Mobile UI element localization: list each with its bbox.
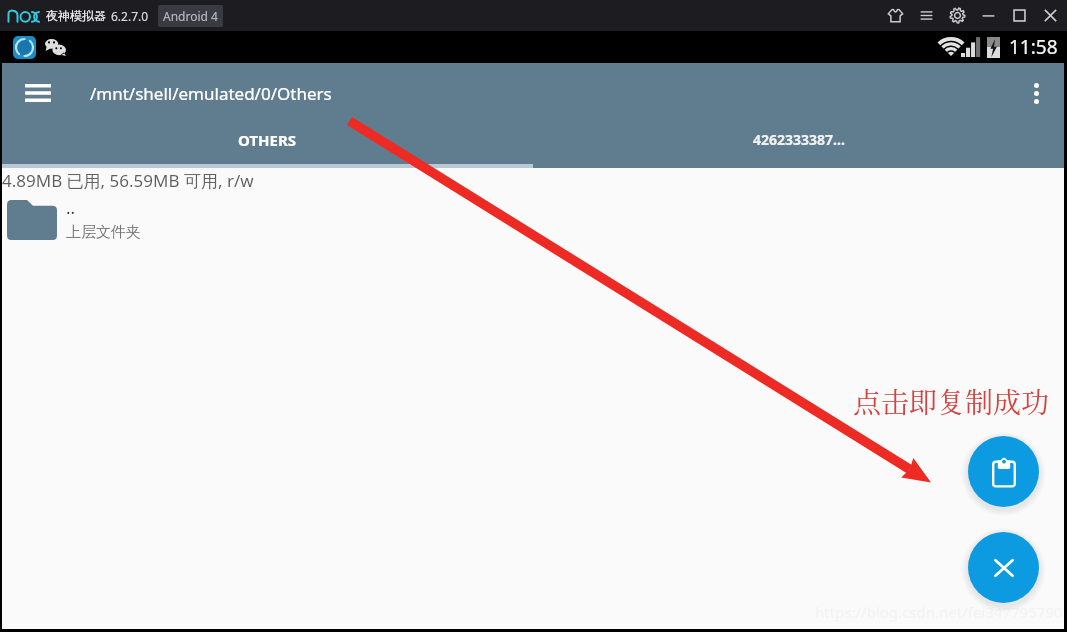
staticText: 11:58 (1009, 34, 1058, 60)
button[interactable]: 4262333387... (533, 123, 1064, 164)
staticText: 上层文件夹 (66, 223, 141, 242)
button[interactable]: Copy path (968, 436, 1039, 507)
staticText: Android 4 (163, 8, 218, 24)
staticText: 夜神模拟器 (46, 8, 106, 23)
staticText: OTHERS (238, 130, 297, 150)
button[interactable]: Maximize (1004, 0, 1035, 31)
staticText: 4.89MB 已用, 56.59MB 可用, r/w (2, 169, 254, 192)
staticText: https://blog.csdn.net/fei347795790 (815, 602, 1063, 622)
button[interactable]: Close (1035, 0, 1066, 31)
staticText: 6.2.7.0 (111, 8, 149, 24)
button[interactable]: More options (1012, 69, 1060, 117)
button[interactable]: Menu (911, 0, 942, 31)
button[interactable]: Minimize (973, 0, 1004, 31)
staticText: 4262333387... (753, 130, 845, 149)
button[interactable]: Close (968, 532, 1039, 603)
staticText: .. (66, 196, 76, 219)
button[interactable]: OTHERS (2, 123, 533, 164)
staticText: /mnt/shell/emulated/0/Others (90, 82, 332, 105)
button[interactable]: Settings (942, 0, 973, 31)
button[interactable]: Open navigation drawer (14, 69, 62, 117)
button[interactable]: Theme (880, 0, 911, 31)
button[interactable]: .. (2, 197, 1064, 243)
staticText: 点击即复制成功 (853, 381, 1050, 421)
